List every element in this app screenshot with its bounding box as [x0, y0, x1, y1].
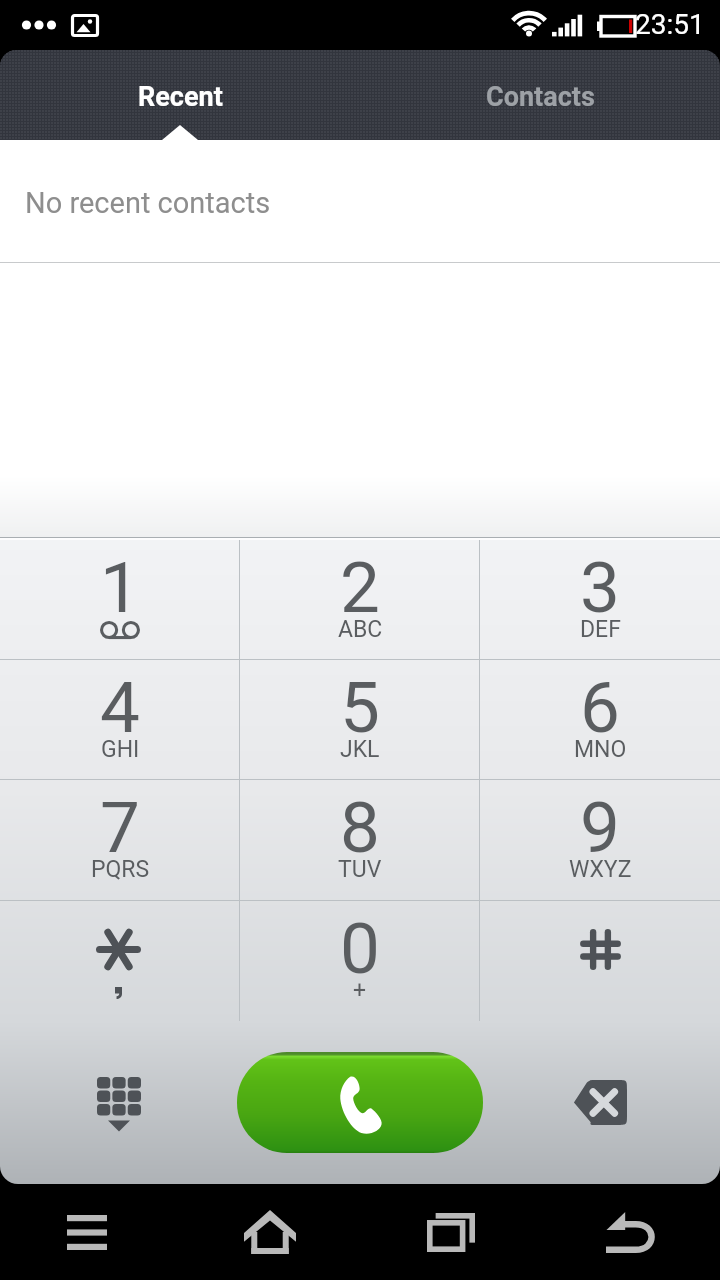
staticText: PQRS: [91, 856, 150, 883]
staticText: 0: [340, 907, 380, 990]
staticText: 6: [580, 666, 620, 749]
button[interactable]: Recent apps: [360, 1184, 540, 1280]
button[interactable]: Contacts: [360, 50, 720, 140]
button[interactable]: 8: [240, 780, 480, 900]
staticText: TUV: [338, 856, 382, 883]
staticText: Recent: [138, 81, 223, 113]
button[interactable]: 0: [240, 901, 480, 1021]
staticText: 9: [580, 786, 620, 869]
button[interactable]: [0, 901, 240, 1021]
staticText: 5: [340, 666, 380, 749]
button[interactable]: Recent: [0, 50, 360, 140]
button[interactable]: 3: [480, 540, 720, 659]
staticText: No recent contacts: [25, 186, 271, 220]
staticText: 23:51: [635, 8, 705, 41]
staticText: MNO: [574, 736, 627, 763]
button[interactable]: 1: [0, 540, 240, 659]
button[interactable]: 9: [480, 780, 720, 900]
staticText: GHI: [101, 736, 140, 763]
staticText: ABC: [338, 616, 383, 643]
staticText: 8: [340, 786, 380, 869]
button[interactable]: Home: [180, 1184, 360, 1280]
staticText: 3: [580, 546, 620, 629]
button[interactable]: 6: [480, 660, 720, 779]
button[interactable]: 4: [0, 660, 240, 779]
staticText: 1: [100, 546, 140, 629]
button[interactable]: Back: [540, 1184, 720, 1280]
staticText: 7: [100, 786, 140, 869]
staticText: Contacts: [486, 81, 595, 113]
button[interactable]: [480, 901, 720, 1021]
button[interactable]: Menu: [0, 1184, 180, 1280]
staticText: 2: [340, 546, 380, 629]
staticText: +: [353, 977, 367, 1004]
staticText: DEF: [580, 616, 621, 643]
button[interactable]: Show dialpad: [0, 1021, 237, 1184]
button[interactable]: Call: [237, 1052, 483, 1153]
staticText: 4: [100, 666, 140, 749]
button[interactable]: 5: [240, 660, 480, 779]
staticText: WXYZ: [569, 856, 632, 883]
button[interactable]: 2: [240, 540, 480, 659]
button[interactable]: Backspace: [483, 1021, 720, 1184]
staticText: JKL: [340, 736, 380, 763]
button[interactable]: 7: [0, 780, 240, 900]
